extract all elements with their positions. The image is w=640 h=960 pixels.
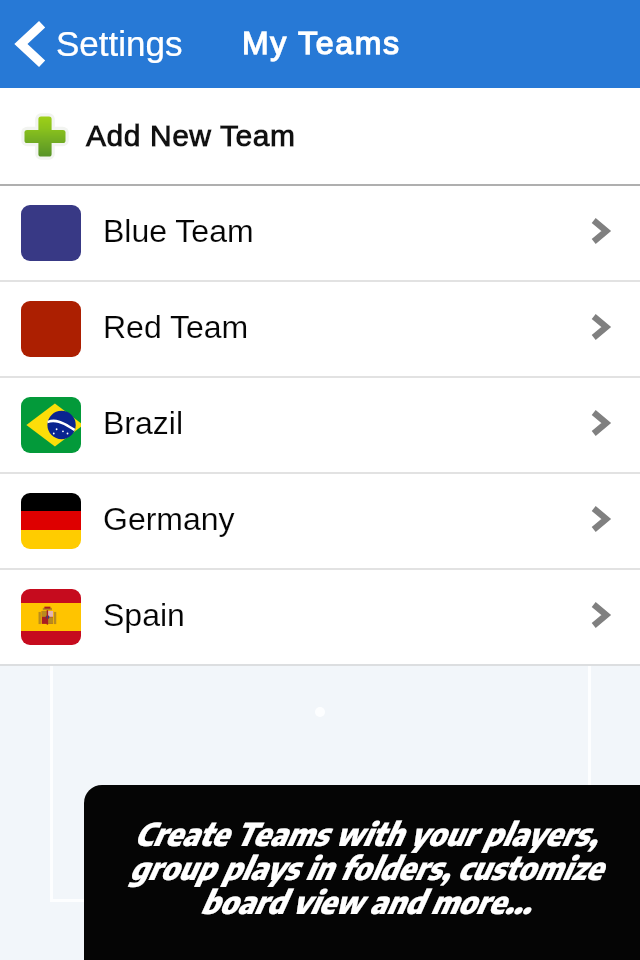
button[interactable]: Add New Team: [0, 88, 640, 184]
staticText: Germany: [103, 501, 235, 537]
button[interactable]: Settings: [0, 0, 193, 88]
button[interactable]: Blue Team: [0, 186, 640, 280]
button[interactable]: Create Teams with your players, group pl…: [84, 785, 640, 960]
staticText: Spain: [103, 597, 185, 633]
staticText: Red Team: [103, 309, 249, 345]
staticText: Create Teams with your players, group pl…: [87, 814, 640, 921]
button[interactable]: Brazil: [0, 378, 640, 472]
button[interactable]: Red Team: [0, 282, 640, 376]
staticText: My Teams: [242, 25, 401, 61]
staticText: Blue Team: [103, 213, 254, 249]
button[interactable]: Germany: [0, 474, 640, 568]
staticText: Add New Team: [86, 119, 296, 153]
button[interactable]: Spain: [0, 570, 640, 664]
staticText: Settings: [56, 24, 183, 63]
staticText: Brazil: [103, 405, 184, 441]
